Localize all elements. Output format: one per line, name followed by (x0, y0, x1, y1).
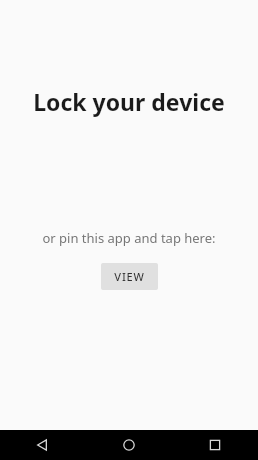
staticText: Lock your device (16, 86, 242, 117)
button[interactable]: VIEW (101, 263, 158, 290)
button[interactable]: Recent apps (172, 430, 258, 460)
button[interactable]: Back (0, 430, 86, 460)
staticText: or pin this app and tap here: (16, 229, 242, 247)
button[interactable]: Home (86, 430, 172, 460)
staticText: VIEW (114, 269, 145, 284)
